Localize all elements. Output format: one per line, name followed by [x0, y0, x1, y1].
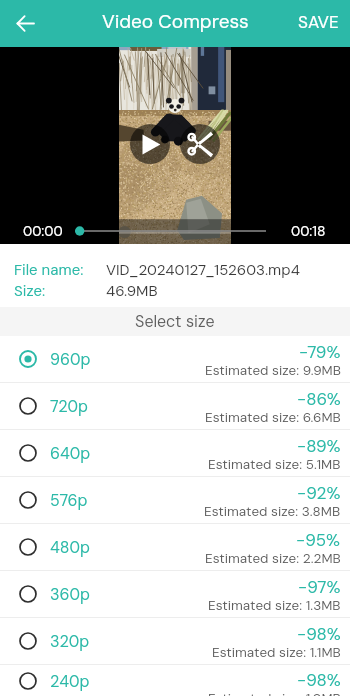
- staticText: Estimated size: 1.0MB: [208, 690, 341, 696]
- staticText: 00:18: [291, 222, 326, 240]
- staticText: Select size: [135, 311, 215, 332]
- button[interactable]: Trim: [180, 124, 220, 164]
- staticText: -97%: [298, 576, 341, 598]
- staticText: 720p: [50, 396, 88, 417]
- staticText: -92%: [297, 482, 341, 504]
- button[interactable]: 320p: [0, 618, 350, 664]
- staticText: Video Compress: [102, 9, 249, 34]
- staticText: 640p: [50, 443, 91, 464]
- button[interactable]: 576p: [0, 477, 350, 523]
- button[interactable]: Play: [130, 124, 170, 164]
- staticText: VID_20240127_152603.mp4: [106, 260, 300, 280]
- staticText: Estimated size: 2.2MB: [205, 550, 341, 568]
- staticText: 960p: [50, 349, 91, 370]
- button[interactable]: 960p: [0, 336, 350, 382]
- staticText: -95%: [296, 529, 341, 551]
- button[interactable]: 640p: [0, 430, 350, 476]
- button[interactable]: 480p: [0, 524, 350, 570]
- button[interactable]: SAVE: [284, 2, 350, 46]
- staticText: Estimated size: 1.3MB: [208, 597, 341, 615]
- staticText: 00:00: [23, 222, 63, 240]
- staticText: 46.9MB: [106, 281, 158, 301]
- staticText: 576p: [50, 490, 88, 511]
- staticText: -98%: [297, 669, 341, 691]
- staticText: -86%: [297, 388, 341, 410]
- staticText: 480p: [50, 537, 90, 558]
- staticText: -79%: [299, 341, 341, 363]
- staticText: -89%: [297, 435, 341, 457]
- staticText: 360p: [50, 584, 91, 605]
- staticText: SAVE: [298, 11, 339, 33]
- button[interactable]: 240p: [0, 665, 350, 697]
- staticText: 320p: [50, 631, 90, 652]
- staticText: -98%: [297, 623, 341, 645]
- staticText: Estimated size: 3.8MB: [204, 503, 341, 521]
- button[interactable]: Back: [5, 4, 45, 44]
- button[interactable]: 720p: [0, 383, 350, 429]
- staticText: Estimated size: 1.1MB: [212, 644, 341, 662]
- staticText: Size:: [14, 281, 46, 301]
- staticText: File name:: [14, 260, 84, 280]
- staticText: 240p: [50, 671, 90, 692]
- staticText: Estimated size: 5.1MB: [208, 456, 341, 474]
- staticText: Estimated size: 6.6MB: [205, 409, 341, 427]
- staticText: Estimated size: 9.9MB: [205, 362, 341, 380]
- button[interactable]: 360p: [0, 571, 350, 617]
